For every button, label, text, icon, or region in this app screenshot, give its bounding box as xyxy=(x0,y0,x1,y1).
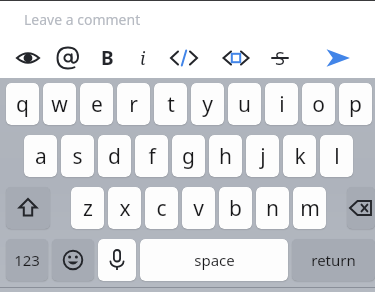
staticText: y xyxy=(202,90,213,119)
button[interactable]: j xyxy=(246,135,279,177)
staticText: j xyxy=(260,142,266,171)
button[interactable] xyxy=(52,239,94,281)
button[interactable]: d xyxy=(98,135,131,177)
staticText: g xyxy=(182,142,195,171)
staticText: t xyxy=(167,90,175,119)
staticText: h xyxy=(219,142,232,171)
staticText: d xyxy=(108,142,121,171)
button[interactable] xyxy=(6,187,50,229)
button[interactable]: return xyxy=(292,239,375,281)
button[interactable]: 123 xyxy=(6,239,48,281)
staticText: w xyxy=(51,90,68,119)
staticText: S xyxy=(275,46,285,71)
button[interactable]: Send xyxy=(314,41,362,75)
staticText: x xyxy=(119,194,131,223)
button[interactable]: Preview xyxy=(11,43,45,73)
staticText: space xyxy=(194,250,235,270)
button[interactable]: Inline code xyxy=(163,43,205,73)
staticText: z xyxy=(83,194,93,223)
button[interactable]: l xyxy=(320,135,353,177)
staticText: Leave a comment xyxy=(24,10,141,29)
staticText: f xyxy=(148,142,156,171)
button[interactable]: v xyxy=(182,187,215,229)
staticText: e xyxy=(91,90,103,119)
button[interactable]: i xyxy=(265,83,298,125)
button[interactable]: space xyxy=(140,239,288,281)
staticText: v xyxy=(193,194,204,223)
button[interactable]: i xyxy=(129,43,157,73)
staticText: s xyxy=(72,142,83,171)
button[interactable]: Code block xyxy=(215,43,257,73)
button[interactable]: b xyxy=(219,187,252,229)
button[interactable]: g xyxy=(172,135,205,177)
staticText: o xyxy=(312,90,325,119)
staticText: i xyxy=(140,46,146,71)
staticText: m xyxy=(300,194,320,223)
button[interactable]: p xyxy=(339,83,372,125)
button[interactable]: u xyxy=(228,83,261,125)
staticText: B xyxy=(101,45,114,71)
staticText: n xyxy=(266,194,279,223)
button[interactable]: a xyxy=(24,135,57,177)
button[interactable]: o xyxy=(302,83,335,125)
button[interactable]: t xyxy=(154,83,187,125)
button[interactable]: Leave a comment xyxy=(0,1,375,37)
button[interactable]: Mention xyxy=(51,43,85,73)
button[interactable]: r xyxy=(117,83,150,125)
button[interactable]: m xyxy=(293,187,326,229)
staticText: b xyxy=(229,194,242,223)
staticText: k xyxy=(294,142,306,171)
button[interactable] xyxy=(347,187,375,229)
button[interactable]: h xyxy=(209,135,242,177)
button[interactable]: f xyxy=(135,135,168,177)
button[interactable] xyxy=(98,239,136,281)
button[interactable]: q xyxy=(6,83,39,125)
staticText: r xyxy=(129,90,138,119)
button[interactable]: B xyxy=(92,43,122,73)
staticText: 123 xyxy=(14,250,40,270)
button[interactable]: x xyxy=(108,187,141,229)
staticText: q xyxy=(16,90,29,119)
staticText: i xyxy=(279,90,285,119)
staticText: a xyxy=(35,142,47,171)
button[interactable]: n xyxy=(256,187,289,229)
button[interactable]: Strikethrough xyxy=(265,43,295,73)
button[interactable]: w xyxy=(43,83,76,125)
staticText: return xyxy=(311,250,356,270)
button[interactable]: y xyxy=(191,83,224,125)
staticText: c xyxy=(156,194,167,223)
button[interactable]: s xyxy=(61,135,94,177)
staticText: l xyxy=(334,142,340,171)
button[interactable]: c xyxy=(145,187,178,229)
staticText: p xyxy=(349,90,362,119)
button[interactable]: e xyxy=(80,83,113,125)
staticText: u xyxy=(238,90,251,119)
button[interactable]: z xyxy=(71,187,104,229)
button[interactable]: k xyxy=(283,135,316,177)
